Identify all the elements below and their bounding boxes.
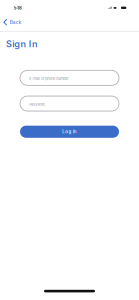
staticText: Log in [62, 129, 77, 134]
staticText: Sign In [6, 38, 38, 49]
button[interactable]: Log in [20, 126, 119, 138]
button[interactable]: Back [0, 14, 26, 27]
staticText: Back [10, 19, 22, 25]
staticText: 5:18 [14, 5, 22, 11]
staticText: E-mail or phone number [29, 76, 68, 81]
staticText: Password [29, 102, 45, 106]
